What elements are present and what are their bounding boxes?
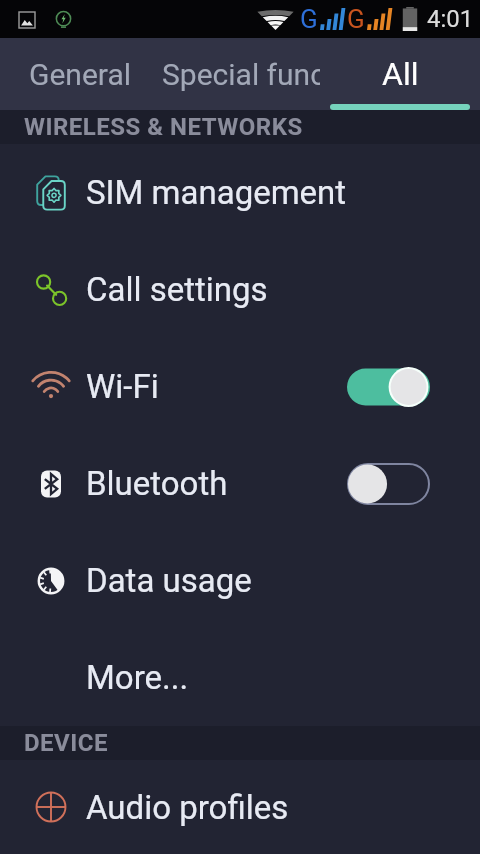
staticText: Bluetooth (86, 464, 347, 503)
staticText: G (300, 4, 318, 34)
button[interactable]: Audio profiles (0, 760, 480, 854)
staticText: 4:01 (427, 5, 474, 33)
staticText: Call settings (86, 270, 480, 309)
staticText: G (347, 4, 365, 34)
button[interactable]: All (320, 38, 480, 110)
staticText: Wi-Fi (86, 367, 347, 406)
button[interactable]: Data usage (0, 532, 480, 629)
button[interactable]: Switch off (347, 463, 430, 505)
staticText: DEVICE (24, 729, 109, 757)
staticText: All (382, 55, 419, 93)
button[interactable]: Bluetooth (0, 435, 480, 532)
staticText: More... (86, 658, 480, 697)
staticText: Audio profiles (86, 788, 480, 827)
staticText: SIM management (86, 173, 480, 212)
staticText: WIRELESS & NETWORKS (24, 113, 303, 141)
button[interactable]: General (0, 38, 160, 110)
button[interactable]: Call settings (0, 241, 480, 338)
staticText: Data usage (86, 561, 480, 600)
staticText: Special functions (162, 57, 320, 92)
button[interactable]: More... (0, 629, 480, 726)
staticText: General (29, 57, 132, 92)
button[interactable]: Switch on (347, 366, 430, 408)
button[interactable]: SIM management (0, 144, 480, 241)
button[interactable]: Special functions (160, 38, 320, 110)
button[interactable]: Wi-Fi (0, 338, 480, 435)
